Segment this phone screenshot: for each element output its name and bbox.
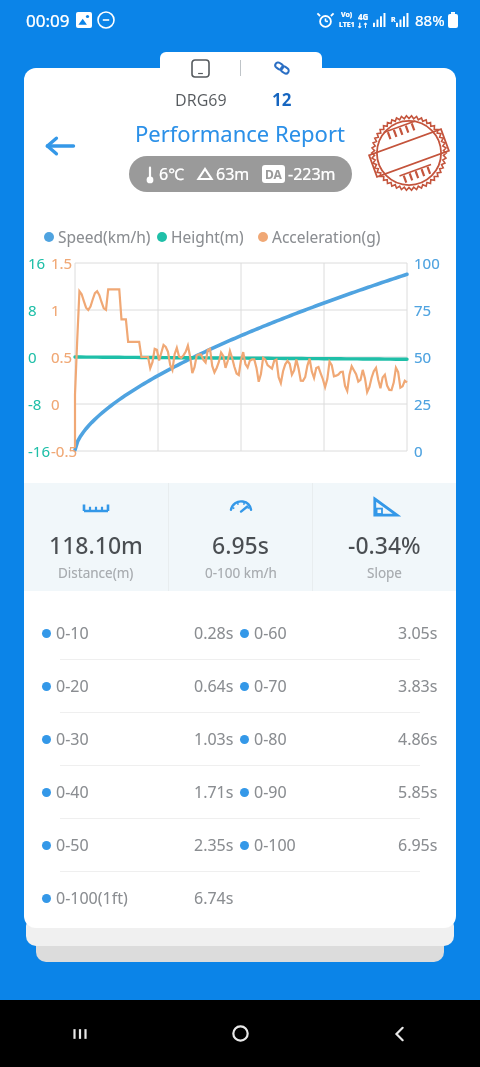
staticText: Distance(m) (58, 564, 134, 582)
staticText: 0-80 (254, 728, 287, 750)
staticText: 0.5 (51, 347, 73, 367)
button[interactable]: -0.34% (313, 483, 456, 591)
staticText: 0-30 (56, 728, 89, 750)
staticText: 0-100 km/h (205, 564, 277, 582)
staticText: 1.03s (194, 728, 234, 750)
staticText: 16 (28, 253, 46, 273)
staticText: 6.95s (212, 529, 269, 560)
button[interactable]: 0-50 (24, 819, 456, 871)
staticText: DA (265, 166, 282, 182)
staticText: 0-70 (254, 675, 287, 697)
staticText: 8 (28, 300, 37, 320)
button[interactable]: 0-10 (24, 607, 456, 659)
button[interactable]: 0-100(1ft) (24, 872, 456, 924)
staticText: 0.64s (194, 675, 234, 697)
staticText: 0 (28, 347, 37, 367)
staticText: 50 (414, 347, 432, 367)
staticText: 12 (272, 88, 292, 111)
other: Connection (273, 59, 291, 77)
button[interactable]: Back (34, 120, 86, 172)
staticText: -16 (28, 441, 50, 461)
staticText: 100 (414, 253, 440, 273)
staticText: 0 (51, 394, 60, 414)
staticText: Vo) (341, 10, 353, 20)
other: Device (192, 60, 209, 77)
staticText: 2.35s (194, 834, 234, 856)
button[interactable]: 0-20 (24, 660, 456, 712)
button[interactable]: 0-40 (24, 766, 456, 818)
staticText: 0-50 (56, 834, 89, 856)
staticText: 3.83s (398, 675, 438, 697)
button[interactable]: Connection (241, 52, 322, 84)
staticText: 0-40 (56, 781, 89, 803)
staticText: 0 (414, 441, 423, 461)
staticText: 1.5 (51, 253, 73, 273)
staticText: ↓↑ (357, 22, 369, 30)
staticText: 6.95s (398, 834, 438, 856)
staticText: 1 (51, 300, 60, 320)
staticText: Acceleration(g) (272, 226, 381, 247)
staticText: 75 (414, 300, 432, 320)
staticText: 1.71s (194, 781, 234, 803)
staticText: 4.86s (398, 728, 438, 750)
staticText: 00:09 (26, 9, 70, 32)
staticText: 118.10m (49, 529, 143, 560)
button[interactable]: Recent apps (0, 1000, 160, 1067)
staticText: Slope (367, 564, 402, 582)
button[interactable]: 6℃ (129, 156, 352, 192)
staticText: 0-20 (56, 675, 89, 697)
staticText: 0-100(1ft) (56, 887, 128, 909)
staticText: 6℃ (159, 163, 185, 185)
staticText: 0-10 (56, 622, 89, 644)
staticText: -8 (28, 394, 42, 414)
staticText: Performance Report (135, 118, 345, 148)
staticText: 25 (414, 394, 432, 414)
staticText: 3.05s (398, 622, 438, 644)
button[interactable]: 118.10m (24, 483, 168, 591)
staticText: Speed(km/h) (58, 226, 151, 247)
staticText: 0-60 (254, 622, 287, 644)
button[interactable]: Device (160, 52, 240, 84)
staticText: 4G (358, 11, 369, 22)
staticText: 0-90 (254, 781, 287, 803)
button[interactable]: Back (320, 1000, 480, 1067)
button[interactable]: 6.95s (169, 483, 312, 591)
staticText: 5.85s (398, 781, 438, 803)
button[interactable]: Home (160, 1000, 320, 1067)
button[interactable]: 0-30 (24, 713, 456, 765)
staticText: Height(m) (171, 226, 244, 247)
staticText: 88% (415, 10, 445, 30)
staticText: -0.5 (51, 441, 78, 461)
staticText: R (391, 15, 396, 25)
staticText: LTE1 (339, 20, 355, 30)
staticText: -0.34% (348, 529, 421, 560)
staticText: 0.28s (194, 622, 234, 644)
staticText: 63m (216, 163, 250, 185)
staticText: 0-100 (254, 834, 296, 856)
staticText: DRG69 (175, 89, 227, 111)
staticText: -223m (288, 163, 336, 185)
staticText: 6.74s (194, 887, 234, 909)
